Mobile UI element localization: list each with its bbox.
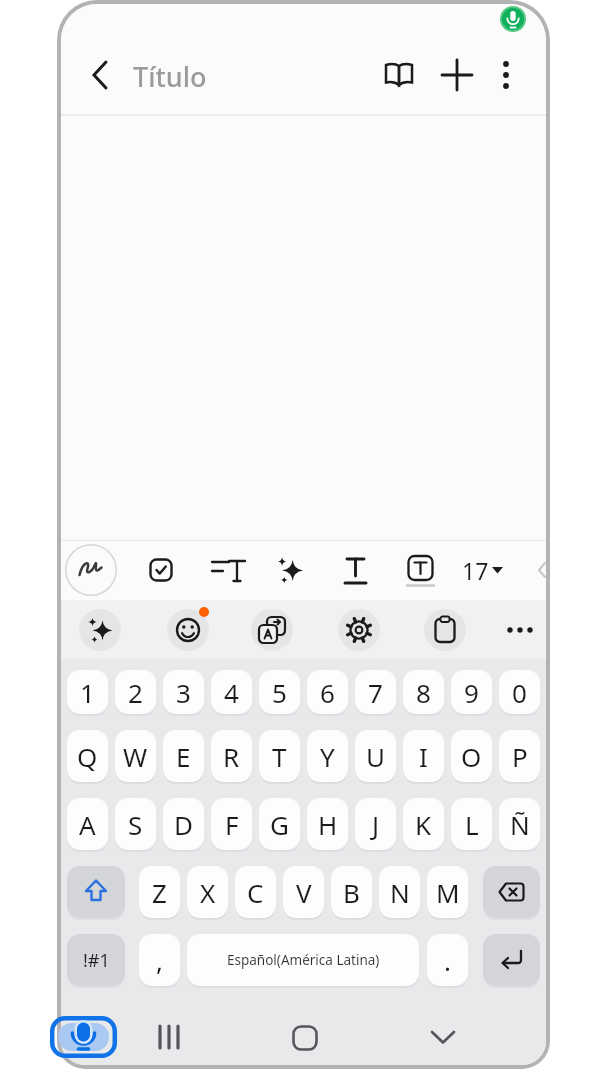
button[interactable]: C <box>235 866 276 918</box>
button[interactable]: M <box>427 866 468 918</box>
button[interactable]: U <box>355 730 396 782</box>
button[interactable]: F <box>211 798 252 850</box>
button[interactable] <box>283 1016 327 1060</box>
button[interactable]: 8 <box>403 670 444 714</box>
button[interactable] <box>65 544 117 596</box>
button[interactable] <box>490 57 522 93</box>
button[interactable]: Q <box>67 730 108 782</box>
staticText: E <box>176 739 191 774</box>
button[interactable] <box>483 934 540 986</box>
staticText: N <box>390 875 410 910</box>
staticText: Z <box>152 875 167 910</box>
button[interactable]: X <box>187 866 228 918</box>
button[interactable]: N <box>379 866 420 918</box>
button[interactable]: G <box>259 798 300 850</box>
button[interactable]: R <box>211 730 252 782</box>
staticText: W <box>123 739 148 774</box>
button[interactable] <box>79 609 121 651</box>
staticText: Título <box>133 58 207 95</box>
button[interactable]: Y <box>307 730 348 782</box>
button[interactable]: Ñ <box>499 798 540 850</box>
button[interactable]: B <box>331 866 372 918</box>
staticText: A <box>79 807 96 842</box>
button[interactable] <box>483 866 540 918</box>
button[interactable] <box>424 609 466 651</box>
staticText: V <box>296 875 312 910</box>
button[interactable]: 3 <box>163 670 204 714</box>
staticText: 3 <box>176 675 191 710</box>
button[interactable] <box>167 609 209 651</box>
button[interactable] <box>82 57 118 93</box>
staticText: M <box>436 875 460 910</box>
button[interactable]: , <box>139 934 180 986</box>
staticText: 5 <box>272 675 287 710</box>
staticText: H <box>318 807 338 842</box>
button[interactable] <box>401 550 441 590</box>
staticText: L <box>465 807 479 842</box>
staticText: Ñ <box>510 807 530 842</box>
button[interactable]: L <box>451 798 492 850</box>
button[interactable] <box>421 1015 465 1059</box>
staticText: 2 <box>128 675 143 710</box>
button[interactable]: 2 <box>115 670 156 714</box>
staticText: 17 <box>462 555 489 586</box>
staticText: I <box>419 739 428 774</box>
button[interactable]: D <box>163 798 204 850</box>
button[interactable] <box>502 616 538 644</box>
staticText: 9 <box>464 675 479 710</box>
staticText: !#1 <box>83 948 110 973</box>
staticText: 7 <box>368 675 383 710</box>
staticText: D <box>174 807 193 842</box>
button[interactable]: P <box>499 730 540 782</box>
button[interactable] <box>206 550 246 590</box>
button[interactable]: A <box>67 798 108 850</box>
button[interactable]: O <box>451 730 492 782</box>
button[interactable]: I <box>403 730 444 782</box>
staticText: B <box>343 875 360 910</box>
button[interactable] <box>270 550 310 590</box>
button[interactable]: 4 <box>211 670 252 714</box>
button[interactable]: Español(América Latina) <box>187 934 419 986</box>
button[interactable] <box>379 55 419 95</box>
staticText: G <box>270 807 289 842</box>
staticText: . <box>444 943 451 978</box>
staticText: J <box>372 807 380 842</box>
staticText: 6 <box>320 675 335 710</box>
button[interactable]: 17 <box>462 550 518 590</box>
button[interactable] <box>336 550 376 590</box>
button[interactable]: 1 <box>67 670 108 714</box>
button[interactable]: 6 <box>307 670 348 714</box>
button[interactable]: H <box>307 798 348 850</box>
button[interactable]: 7 <box>355 670 396 714</box>
button[interactable]: 9 <box>451 670 492 714</box>
button[interactable]: J <box>355 798 396 850</box>
button[interactable]: S <box>115 798 156 850</box>
button[interactable] <box>437 55 477 95</box>
staticText: Q <box>77 739 98 774</box>
staticText: X <box>200 875 216 910</box>
button[interactable] <box>147 1015 191 1059</box>
staticText: U <box>366 739 386 774</box>
button[interactable] <box>50 1016 117 1058</box>
button[interactable]: T <box>259 730 300 782</box>
button[interactable]: 0 <box>499 670 540 714</box>
button[interactable]: W <box>115 730 156 782</box>
button[interactable] <box>141 550 181 590</box>
button[interactable]: 5 <box>259 670 300 714</box>
button[interactable]: . <box>427 934 468 986</box>
staticText: O <box>461 739 482 774</box>
staticText: 4 <box>224 675 239 710</box>
button[interactable]: V <box>283 866 324 918</box>
staticText: R <box>223 739 240 774</box>
staticText: 1 <box>80 675 95 710</box>
button[interactable] <box>338 609 380 651</box>
staticText: F <box>225 807 239 842</box>
button[interactable] <box>67 866 125 918</box>
staticText: 0 <box>512 675 527 710</box>
button[interactable]: E <box>163 730 204 782</box>
button[interactable] <box>251 609 293 651</box>
button[interactable]: !#1 <box>67 934 125 986</box>
button[interactable]: Z <box>139 866 180 918</box>
button[interactable]: K <box>403 798 444 850</box>
staticText: C <box>247 875 264 910</box>
